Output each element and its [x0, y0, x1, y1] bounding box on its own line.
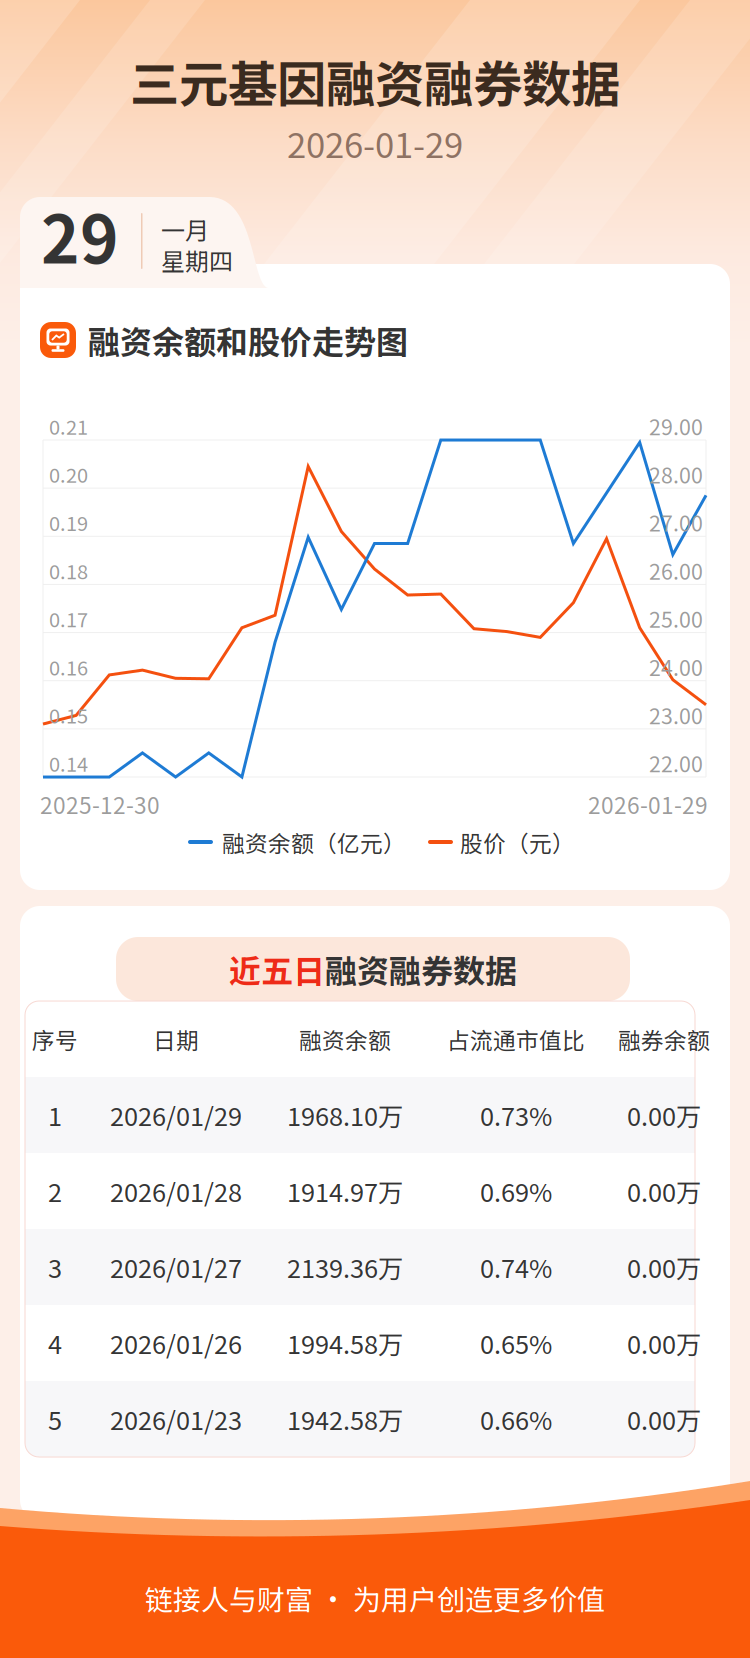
- staticText: 29.00: [649, 411, 703, 441]
- staticText: 1994.58万: [287, 1325, 403, 1361]
- staticText: 2026-01-29: [588, 788, 708, 820]
- staticText: 3: [48, 1249, 62, 1285]
- staticText: 2139.36万: [287, 1249, 403, 1285]
- staticText: 0.21: [49, 411, 88, 440]
- staticText: 0.17: [49, 604, 88, 633]
- staticText: 0.69%: [480, 1173, 552, 1209]
- staticText: 28.00: [649, 459, 703, 490]
- staticText: 22.00: [649, 747, 703, 778]
- staticText: 4: [48, 1325, 62, 1361]
- staticText: 0.19: [49, 508, 88, 537]
- staticText: 2026/01/26: [110, 1325, 242, 1361]
- staticText: 一月: [161, 212, 209, 246]
- staticText: 0.16: [49, 652, 88, 681]
- staticText: 5: [48, 1401, 62, 1437]
- staticText: 融资融券数据: [325, 946, 517, 992]
- staticText: 1968.10万: [287, 1097, 403, 1133]
- staticText: 融券余额: [618, 1023, 710, 1055]
- staticText: 链接人与财富 · 为用户创造更多价值: [145, 1578, 605, 1618]
- staticText: 0.20: [49, 460, 88, 489]
- staticText: 2026/01/23: [110, 1401, 242, 1437]
- staticText: 2026/01/27: [110, 1249, 242, 1285]
- staticText: 0.66%: [480, 1401, 552, 1437]
- staticText: 融资余额和股价走势图: [88, 317, 408, 363]
- staticText: 0.15: [49, 700, 88, 729]
- staticText: 0.74%: [480, 1249, 552, 1285]
- staticText: 2026/01/29: [110, 1097, 242, 1133]
- staticText: 序号: [32, 1023, 78, 1055]
- staticText: 29: [41, 188, 119, 282]
- staticText: 2025-12-30: [40, 788, 160, 820]
- staticText: 27.00: [649, 507, 703, 538]
- staticText: 2: [48, 1173, 62, 1209]
- staticText: 0.00万: [627, 1173, 701, 1209]
- staticText: 融资余额: [299, 1023, 391, 1055]
- staticText: 0.00万: [627, 1325, 701, 1361]
- staticText: 0.18: [49, 556, 88, 585]
- staticText: 0.00万: [627, 1097, 701, 1133]
- staticText: 0.73%: [480, 1097, 552, 1133]
- staticText: 0.00万: [627, 1249, 701, 1285]
- staticText: 近五日: [229, 946, 325, 992]
- staticText: 25.00: [649, 603, 703, 634]
- staticText: 占流通市值比: [447, 1023, 585, 1055]
- staticText: 股价（元）: [460, 826, 575, 858]
- staticText: 0.65%: [480, 1325, 552, 1361]
- staticText: 1914.97万: [287, 1173, 403, 1209]
- staticText: 星期四: [161, 243, 233, 277]
- staticText: 0.00万: [627, 1401, 701, 1437]
- staticText: 1942.58万: [287, 1401, 403, 1437]
- staticText: 日期: [153, 1023, 199, 1055]
- staticText: 0.14: [49, 748, 88, 777]
- staticText: 融资余额（亿元）: [222, 826, 406, 858]
- staticText: 26.00: [649, 555, 703, 586]
- staticText: 1: [48, 1097, 62, 1133]
- staticText: 23.00: [649, 699, 703, 730]
- staticText: 三元基因融资融券数据: [130, 45, 620, 117]
- staticText: 24.00: [649, 651, 703, 682]
- staticText: 2026/01/28: [110, 1173, 242, 1209]
- staticText: 2026-01-29: [287, 118, 463, 168]
